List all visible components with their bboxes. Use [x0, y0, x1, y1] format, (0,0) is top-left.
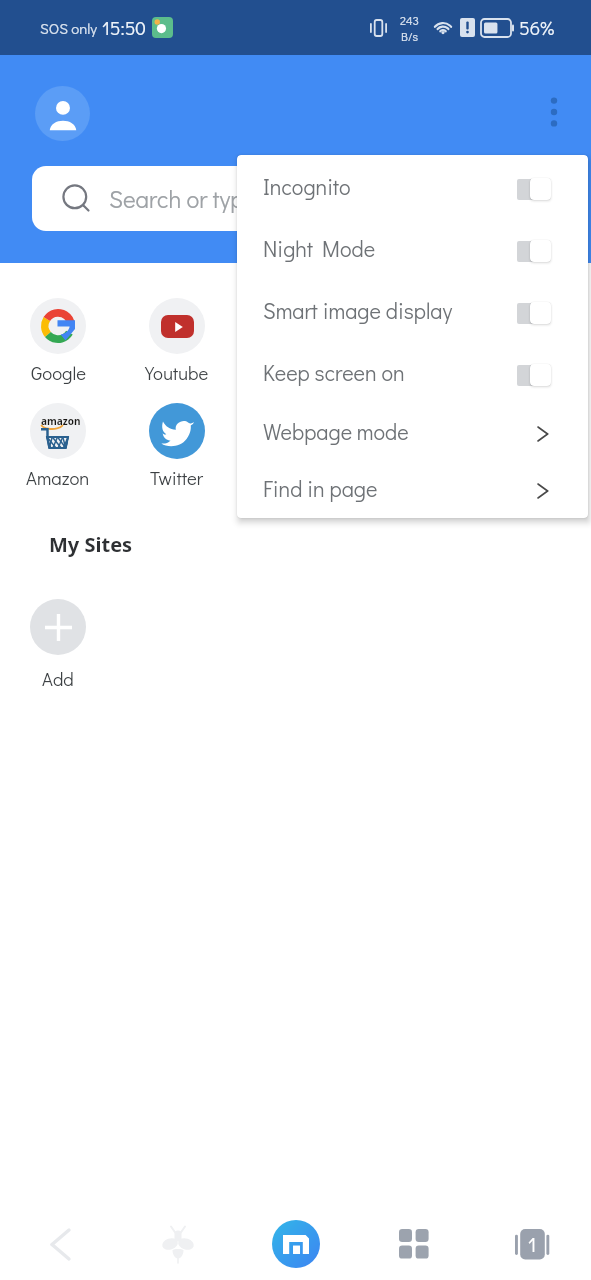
button[interactable]: Search or type web address — [32, 166, 558, 231]
staticText: Youtube — [145, 361, 209, 385]
button[interactable]: Keep screen on — [237, 347, 588, 403]
button[interactable]: amazon — [6, 399, 110, 491]
button[interactable]: Maxthon home — [272, 1220, 320, 1268]
staticText: Twitter — [150, 466, 204, 490]
staticText: Night Mode — [263, 234, 376, 262]
button[interactable]: Bookmarks — [355, 1208, 473, 1280]
button[interactable]: Find in page — [237, 463, 588, 518]
button[interactable]: More options — [530, 88, 578, 136]
staticText: B/s — [401, 28, 418, 44]
staticText: 243 — [400, 12, 419, 28]
button[interactable]: Account — [35, 86, 90, 141]
staticText: Amazon — [26, 466, 90, 490]
button[interactable]: Add — [6, 595, 110, 687]
staticText: Webpage mode — [263, 417, 409, 445]
button[interactable]: Incognito — [237, 161, 588, 217]
staticText: Search or type web address — [109, 183, 393, 214]
staticText: Google — [31, 361, 86, 385]
button[interactable]: Smart image display — [237, 285, 588, 341]
staticText: 56% — [519, 15, 555, 40]
staticText: SOS only — [40, 18, 98, 38]
staticText: amazon — [41, 414, 81, 428]
button[interactable]: Webpage mode — [237, 406, 588, 462]
button[interactable]: Youtube — [125, 294, 229, 386]
staticText: 15:50 — [102, 15, 147, 40]
staticText: Add — [42, 667, 74, 687]
staticText: My Sites — [49, 531, 133, 558]
button[interactable]: Twitter — [125, 399, 229, 491]
button[interactable]: Tabs, 1 open — [473, 1208, 591, 1280]
button[interactable]: Back — [0, 1208, 119, 1280]
staticText: 1 — [528, 1231, 537, 1257]
button[interactable]: Reader mode — [119, 1208, 237, 1280]
button[interactable]: Night Mode — [237, 223, 588, 279]
staticText: Smart image display — [263, 296, 453, 324]
staticText: Incognito — [263, 172, 351, 200]
staticText: Keep screen on — [263, 358, 405, 386]
button[interactable]: Google — [6, 294, 110, 386]
staticText: Find in page — [263, 474, 378, 502]
